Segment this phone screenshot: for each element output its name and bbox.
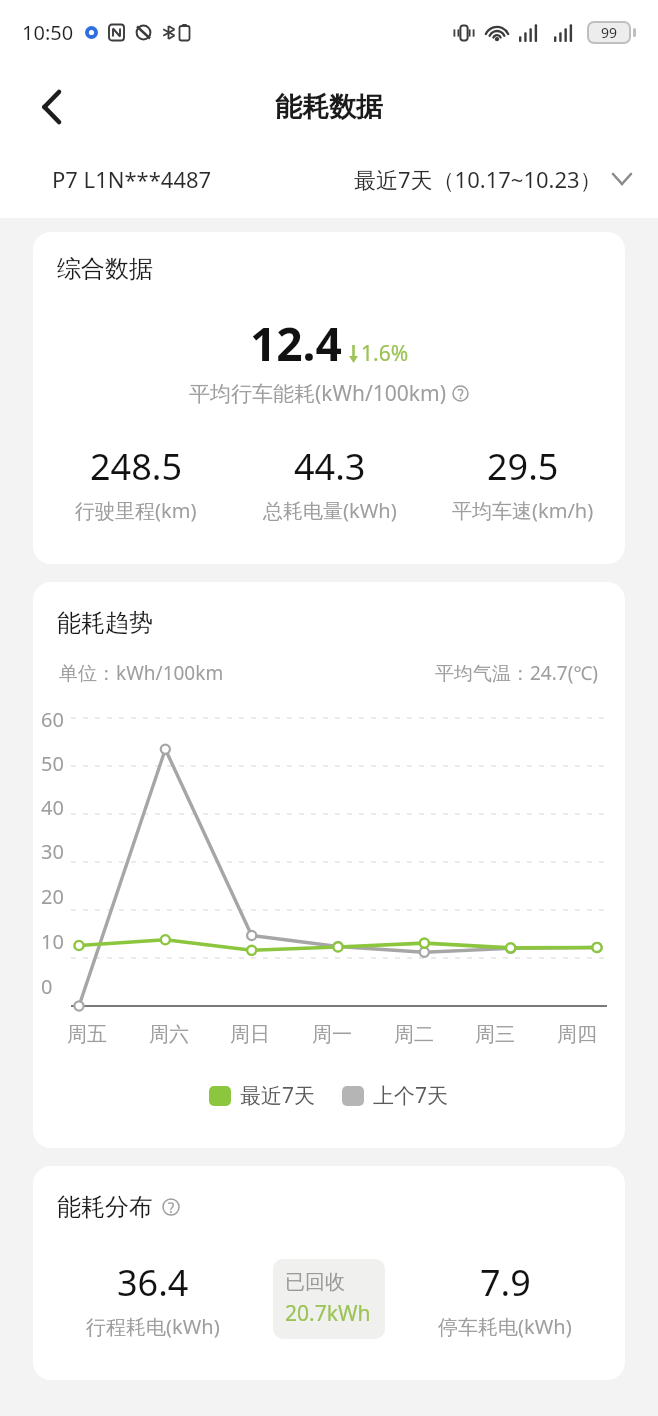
staticText: 周三 (467, 1022, 523, 1047)
staticText: 1.6% (361, 339, 409, 368)
staticText: 0 (41, 973, 53, 1000)
staticText: 周日 (222, 1022, 278, 1047)
staticText: 平均气温：24.7(℃) (435, 660, 599, 686)
staticText: 10 (41, 928, 64, 955)
staticText: 平均车速(km/h) (452, 497, 594, 524)
staticText: 7.9 (480, 1258, 531, 1307)
staticText: 10:50 (22, 19, 74, 46)
staticText: 周一 (304, 1022, 360, 1047)
staticText: 36.4 (117, 1258, 189, 1307)
staticText: 40 (41, 794, 64, 821)
staticText: 综合数据 (57, 254, 153, 284)
staticText: 能耗数据 (275, 90, 383, 124)
staticText: 44.3 (294, 442, 366, 491)
button[interactable]: Back (20, 75, 84, 139)
staticText: 能耗趋势 (57, 608, 153, 638)
staticText: 平均行车能耗(kWh/100km) (189, 379, 447, 408)
staticText: P7 L1N***4487 (52, 164, 212, 194)
staticText: 单位：kWh/100km (59, 660, 224, 686)
staticText: 29.5 (487, 442, 559, 491)
staticText: 60 (41, 706, 64, 733)
staticText: 周四 (549, 1022, 605, 1047)
staticText: 能耗分布 (57, 1192, 153, 1222)
staticText: 行驶里程(km) (75, 497, 197, 524)
staticText: 50 (41, 750, 64, 777)
staticText: 周五 (59, 1022, 115, 1047)
staticText: 99 (601, 23, 618, 42)
staticText: 周六 (141, 1022, 197, 1047)
staticText: 12.4 (250, 312, 342, 375)
staticText: 20 (41, 883, 64, 910)
staticText: 最近7天 (240, 1081, 316, 1110)
staticText: 30 (41, 838, 64, 865)
staticText: 最近7天（10.17~10.23） (354, 164, 602, 194)
staticText: 上个7天 (373, 1081, 449, 1110)
staticText: 停车耗电(kWh) (438, 1313, 572, 1340)
staticText: 248.5 (90, 442, 183, 491)
staticText: 周二 (386, 1022, 442, 1047)
staticText: 已回收 (285, 1270, 345, 1295)
staticText: 总耗电量(kWh) (263, 497, 397, 524)
staticText: 行程耗电(kWh) (86, 1313, 220, 1340)
staticText: 20.7kWh (285, 1299, 371, 1328)
button[interactable]: 最近7天（10.17~10.23） (354, 164, 632, 194)
